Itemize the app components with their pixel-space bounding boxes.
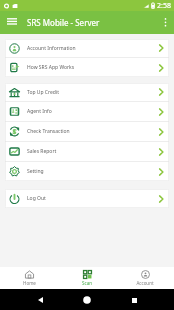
- staticText: SRS Mobile - Server: [27, 17, 100, 28]
- button[interactable]: Home: [0, 267, 58, 289]
- staticText: 2:58: [157, 1, 171, 11]
- button[interactable]: How SRS App Works: [5, 58, 169, 77]
- button[interactable]: Home: [80, 293, 94, 307]
- staticText: Log Out: [27, 195, 46, 202]
- button[interactable]: More options: [157, 11, 174, 34]
- staticText: Agent Info: [27, 108, 52, 115]
- button[interactable]: Agent Info: [5, 102, 169, 121]
- button[interactable]: Account Information: [5, 39, 169, 57]
- button[interactable]: Check Transaction: [5, 122, 169, 141]
- staticText: Setting: [27, 168, 44, 175]
- button[interactable]: Open navigation menu: [0, 11, 23, 34]
- staticText: Account: [136, 280, 154, 286]
- button[interactable]: Log Out: [5, 189, 169, 208]
- staticText: Home: [23, 280, 36, 286]
- staticText: Account Information: [27, 45, 76, 52]
- button[interactable]: Scan: [58, 267, 116, 289]
- button[interactable]: Account: [116, 267, 174, 289]
- button[interactable]: Top Up Credit: [5, 83, 169, 101]
- staticText: Check Transaction: [27, 128, 70, 135]
- staticText: Scan: [82, 280, 92, 286]
- staticText: Sales Report: [27, 148, 57, 155]
- button[interactable]: Setting: [5, 162, 169, 181]
- button[interactable]: Back: [33, 293, 47, 307]
- staticText: Top Up Credit: [27, 89, 59, 96]
- button[interactable]: Recent apps: [127, 293, 141, 307]
- button[interactable]: Sales Report: [5, 142, 169, 161]
- staticText: How SRS App Works: [27, 64, 75, 71]
